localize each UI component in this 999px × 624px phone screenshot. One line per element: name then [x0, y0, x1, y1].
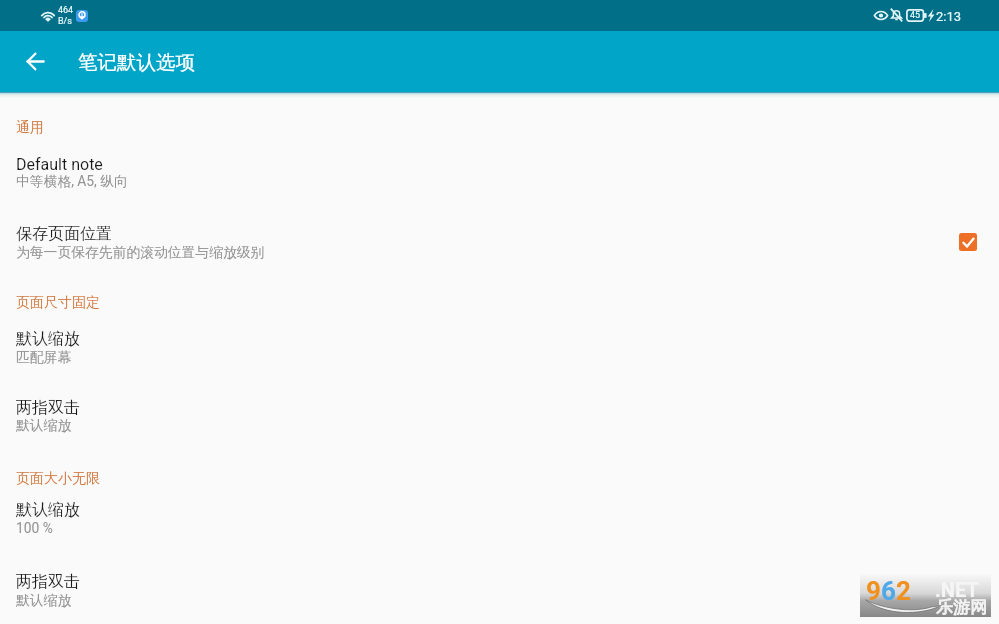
- staticText: B/s: [58, 16, 72, 27]
- button[interactable]: 默认缩放: [0, 491, 999, 545]
- button[interactable]: Default note: [0, 146, 999, 200]
- staticText: Default note: [16, 155, 103, 174]
- button[interactable]: Back: [18, 44, 53, 79]
- staticText: 2: [896, 576, 911, 606]
- staticText: 9: [866, 576, 881, 606]
- staticText: 中等横格, A5, 纵向: [16, 173, 128, 190]
- staticText: 464: [58, 5, 74, 16]
- staticText: 页面尺寸固定: [16, 294, 100, 312]
- button[interactable]: 两指双击: [0, 389, 999, 443]
- staticText: 45: [910, 10, 921, 21]
- staticText: 通用: [16, 119, 44, 137]
- staticText: 笔记默认选项: [78, 50, 195, 75]
- button[interactable]: 默认缩放: [0, 320, 999, 374]
- button[interactable]: 保存页面位置: [0, 215, 999, 269]
- staticText: 两指双击: [16, 398, 80, 418]
- staticText: 保存页面位置: [16, 224, 112, 244]
- staticText: 2:13: [936, 9, 962, 24]
- staticText: 为每一页保存先前的滚动位置与缩放级别: [16, 244, 265, 261]
- staticText: 默认缩放: [16, 592, 72, 609]
- staticText: 默认缩放: [16, 329, 80, 349]
- button[interactable]: 两指双击: [0, 563, 999, 617]
- staticText: 两指双击: [16, 572, 80, 592]
- staticText: 默认缩放: [16, 500, 80, 520]
- staticText: 页面大小无限: [16, 470, 100, 488]
- staticText: 匹配屏幕: [16, 349, 72, 366]
- staticText: 100 %: [16, 520, 53, 536]
- staticText: 默认缩放: [16, 417, 72, 434]
- staticText: 乐游网: [936, 597, 987, 618]
- staticText: .NET: [935, 578, 979, 601]
- staticText: 6: [881, 576, 896, 606]
- button[interactable]: Toggle 保存页面位置: [959, 233, 977, 251]
